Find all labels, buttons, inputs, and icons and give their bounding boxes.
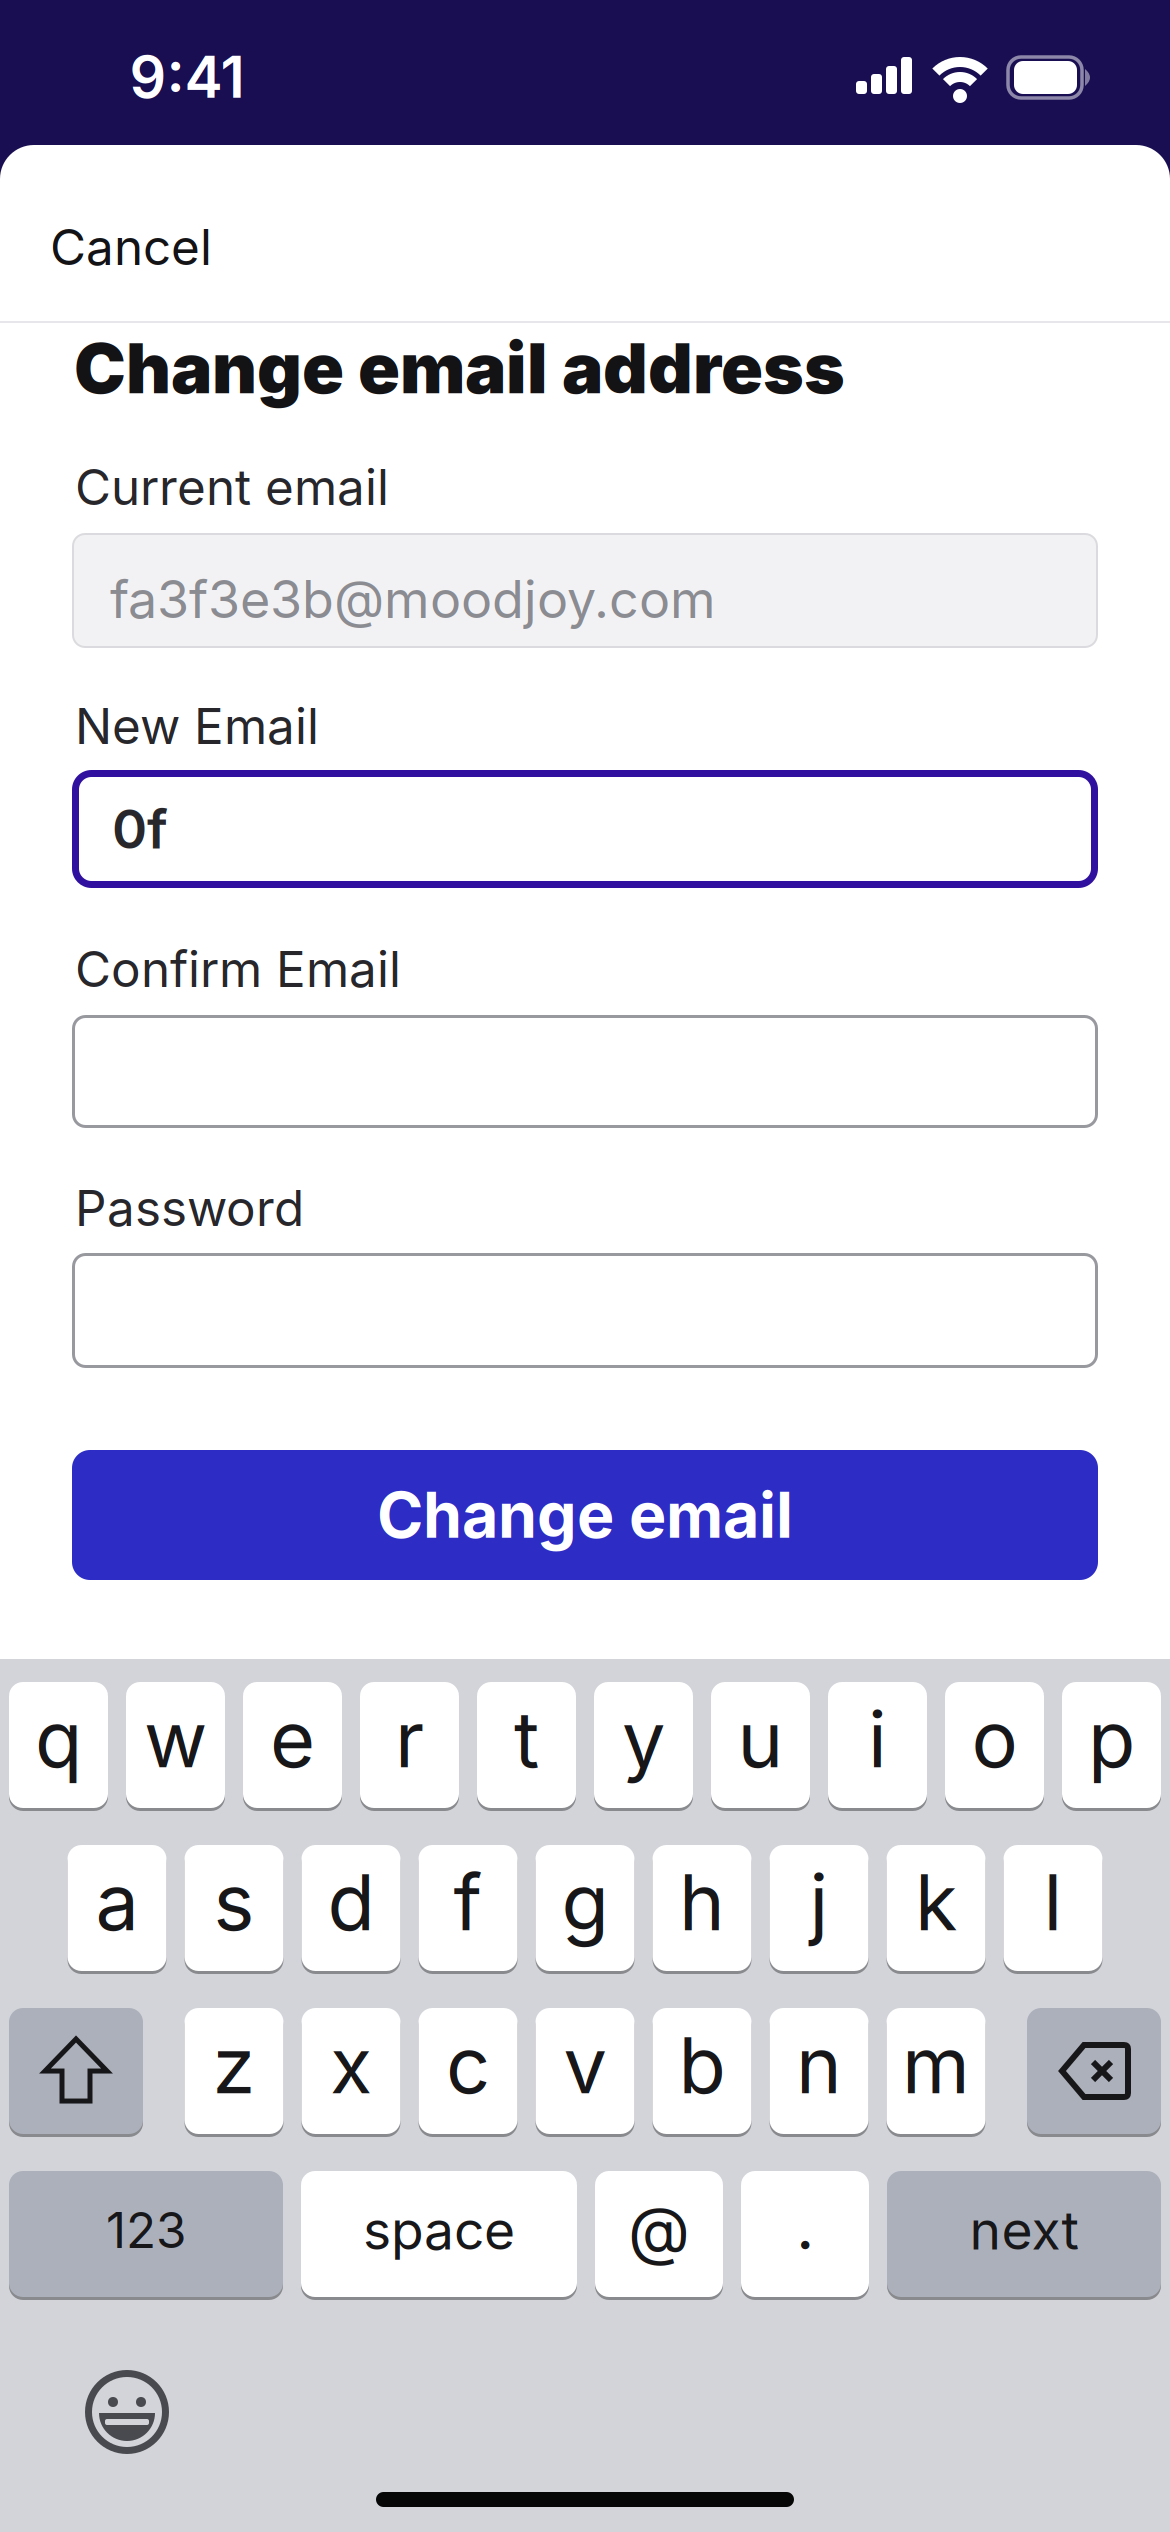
staticText: 0f: [112, 797, 168, 860]
button[interactable]: m: [886, 2008, 985, 2134]
staticText: b: [678, 2019, 725, 2111]
staticText: space: [363, 2198, 515, 2261]
staticText: u: [737, 1693, 783, 1785]
staticText: h: [679, 1856, 725, 1948]
button[interactable]: b: [652, 2008, 751, 2134]
button[interactable]: z: [184, 2008, 283, 2134]
staticText: w: [144, 1693, 207, 1785]
button[interactable]: s: [184, 1845, 283, 1971]
staticText: Change email: [377, 1478, 793, 1552]
staticText: next: [969, 2198, 1078, 2261]
button[interactable]: New Email: [72, 770, 1098, 888]
button[interactable]: Shift: [9, 2008, 143, 2134]
staticText: p: [1088, 1693, 1135, 1785]
staticText: l: [1043, 1856, 1062, 1948]
button[interactable]: 123: [9, 2171, 283, 2297]
button[interactable]: q: [9, 1682, 108, 1808]
staticText: m: [902, 2019, 970, 2111]
button[interactable]: n: [769, 2008, 868, 2134]
button[interactable]: c: [418, 2008, 517, 2134]
button[interactable]: e: [243, 1682, 342, 1808]
button[interactable]: .: [741, 2171, 869, 2297]
staticText: r: [395, 1693, 424, 1785]
staticText: n: [796, 2019, 842, 2111]
staticText: t: [514, 1693, 539, 1785]
staticText: k: [915, 1856, 957, 1948]
button[interactable]: k: [886, 1845, 985, 1971]
button[interactable]: space: [301, 2171, 577, 2297]
button[interactable]: x: [301, 2008, 400, 2134]
staticText: Current email: [75, 458, 389, 516]
button[interactable]: h: [652, 1845, 751, 1971]
staticText: Password: [75, 1179, 304, 1237]
button[interactable]: u: [711, 1682, 810, 1808]
staticText: e: [270, 1693, 315, 1785]
button[interactable]: l: [1003, 1845, 1102, 1971]
staticText: x: [330, 2019, 372, 2111]
staticText: o: [971, 1693, 1017, 1785]
button[interactable]: i: [828, 1682, 927, 1808]
button[interactable]: w: [126, 1682, 225, 1808]
button[interactable]: v: [535, 2008, 634, 2134]
staticText: g: [561, 1856, 608, 1948]
button[interactable]: Change email: [72, 1450, 1098, 1580]
staticText: c: [446, 2019, 490, 2111]
button[interactable]: j: [769, 1845, 868, 1971]
staticText: @: [628, 2192, 690, 2268]
button[interactable]: p: [1062, 1682, 1161, 1808]
staticText: z: [212, 2019, 255, 2111]
button[interactable]: y: [594, 1682, 693, 1808]
staticText: Change email address: [74, 327, 845, 409]
staticText: v: [563, 2019, 606, 2111]
button[interactable]: a: [67, 1845, 166, 1971]
button[interactable]: Password: [72, 1253, 1098, 1368]
staticText: New Email: [75, 697, 319, 755]
button[interactable]: Confirm Email: [72, 1015, 1098, 1128]
staticText: d: [327, 1856, 374, 1948]
staticText: y: [622, 1693, 665, 1785]
staticText: .: [796, 2188, 814, 2264]
button[interactable]: r: [360, 1682, 459, 1808]
staticText: 9:41: [129, 43, 244, 111]
button[interactable]: t: [477, 1682, 576, 1808]
button[interactable]: Delete: [1027, 2008, 1161, 2134]
button[interactable]: o: [945, 1682, 1044, 1808]
staticText: 123: [106, 2201, 186, 2259]
button[interactable]: d: [301, 1845, 400, 1971]
staticText: i: [868, 1693, 887, 1785]
staticText: s: [213, 1856, 254, 1948]
staticText: j: [809, 1856, 828, 1948]
staticText: fa3f3e3b@moodjoy.com: [110, 568, 716, 630]
button[interactable]: Cancel: [0, 192, 380, 302]
button[interactable]: g: [535, 1845, 634, 1971]
button[interactable]: next: [887, 2171, 1161, 2297]
staticText: Confirm Email: [75, 940, 401, 998]
staticText: q: [35, 1693, 82, 1785]
button[interactable]: Emoji: [85, 2370, 169, 2454]
staticText: f: [453, 1856, 482, 1948]
staticText: Cancel: [50, 218, 212, 276]
button[interactable]: @: [595, 2171, 723, 2297]
button[interactable]: f: [418, 1845, 517, 1971]
staticText: a: [95, 1856, 138, 1948]
